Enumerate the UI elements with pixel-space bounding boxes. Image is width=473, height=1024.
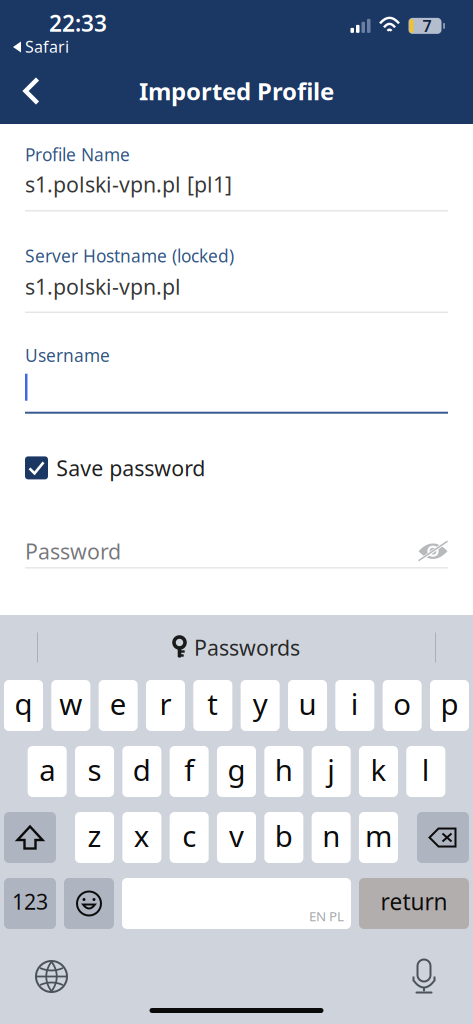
- staticText: v: [229, 816, 244, 855]
- staticText: d: [133, 750, 151, 789]
- button[interactable]: Next keyboard: [0, 949, 79, 1004]
- staticText: Username: [25, 344, 110, 367]
- button[interactable]: [25, 367, 448, 404]
- button[interactable]: q: [4, 680, 43, 731]
- staticText: r: [159, 684, 171, 723]
- button[interactable]: Emoji: [64, 878, 114, 929]
- staticText: i: [351, 684, 359, 723]
- button[interactable]: j: [312, 746, 351, 797]
- staticText: p: [440, 684, 458, 723]
- staticText: z: [87, 816, 101, 855]
- button[interactable]: return: [359, 878, 469, 929]
- staticText: Imported Profile: [139, 75, 334, 107]
- button[interactable]: h: [264, 746, 303, 797]
- staticText: k: [370, 750, 386, 789]
- staticText: 123: [12, 887, 48, 916]
- staticText: c: [182, 816, 196, 855]
- staticText: Server Hostname (locked): [25, 244, 234, 267]
- staticText: j: [327, 750, 335, 789]
- button[interactable]: p: [430, 680, 469, 731]
- staticText: t: [207, 684, 218, 723]
- staticText: a: [39, 750, 55, 789]
- button[interactable]: c: [170, 812, 209, 863]
- button[interactable]: u: [288, 680, 327, 731]
- button[interactable]: Space: [122, 878, 351, 929]
- staticText: Save password: [56, 454, 205, 482]
- staticText: q: [14, 684, 32, 723]
- staticText: s1.polski-vpn.pl: [25, 272, 181, 301]
- button[interactable]: e: [99, 680, 138, 731]
- staticText: Password: [25, 537, 121, 565]
- staticText: f: [184, 750, 194, 789]
- button[interactable]: Passwords: [161, 627, 312, 668]
- button[interactable]: v: [217, 812, 256, 863]
- button[interactable]: Safari: [0, 1, 69, 57]
- button[interactable]: g: [217, 746, 256, 797]
- button[interactable]: r: [146, 680, 185, 731]
- staticText: x: [134, 816, 150, 855]
- staticText: e: [110, 684, 127, 723]
- staticText: return: [380, 886, 447, 916]
- staticText: Safari: [25, 36, 69, 57]
- button[interactable]: l: [406, 746, 445, 797]
- staticText: 22:33: [49, 8, 107, 38]
- button[interactable]: Dictate: [399, 946, 473, 1006]
- staticText: h: [275, 750, 293, 789]
- staticText: Profile Name: [25, 143, 130, 166]
- staticText: w: [59, 684, 82, 723]
- button[interactable]: Show password: [418, 542, 448, 561]
- button[interactable]: w: [51, 680, 90, 731]
- button[interactable]: x: [122, 812, 161, 863]
- button[interactable]: i: [335, 680, 374, 731]
- button[interactable]: o: [383, 680, 422, 731]
- staticText: n: [322, 816, 340, 855]
- staticText: s: [87, 750, 101, 789]
- staticText: u: [298, 684, 316, 723]
- button[interactable]: Back: [0, 66, 51, 115]
- staticText: y: [253, 684, 268, 723]
- button[interactable]: Shift: [4, 812, 56, 863]
- staticText: Passwords: [194, 633, 300, 662]
- button[interactable]: z: [75, 812, 114, 863]
- staticText: 7: [422, 15, 431, 36]
- staticText: l: [422, 750, 430, 789]
- staticText: g: [227, 750, 245, 789]
- staticText: s1.polski-vpn.pl [pl1]: [25, 170, 232, 198]
- button[interactable]: t: [193, 680, 232, 731]
- staticText: EN PL: [309, 907, 344, 925]
- staticText: o: [393, 684, 411, 723]
- button[interactable]: n: [312, 812, 351, 863]
- button[interactable]: Delete: [417, 812, 469, 863]
- staticText: b: [275, 816, 293, 855]
- button[interactable]: b: [264, 812, 303, 863]
- button[interactable]: k: [359, 746, 398, 797]
- staticText: m: [365, 816, 392, 855]
- button[interactable]: m: [359, 812, 398, 863]
- button[interactable]: f: [170, 746, 209, 797]
- button[interactable]: d: [122, 746, 161, 797]
- button[interactable]: a: [28, 746, 67, 797]
- button[interactable]: y: [241, 680, 280, 731]
- button[interactable]: s: [75, 746, 114, 797]
- button[interactable]: Save password: [25, 414, 448, 482]
- button[interactable]: 123: [4, 878, 56, 929]
